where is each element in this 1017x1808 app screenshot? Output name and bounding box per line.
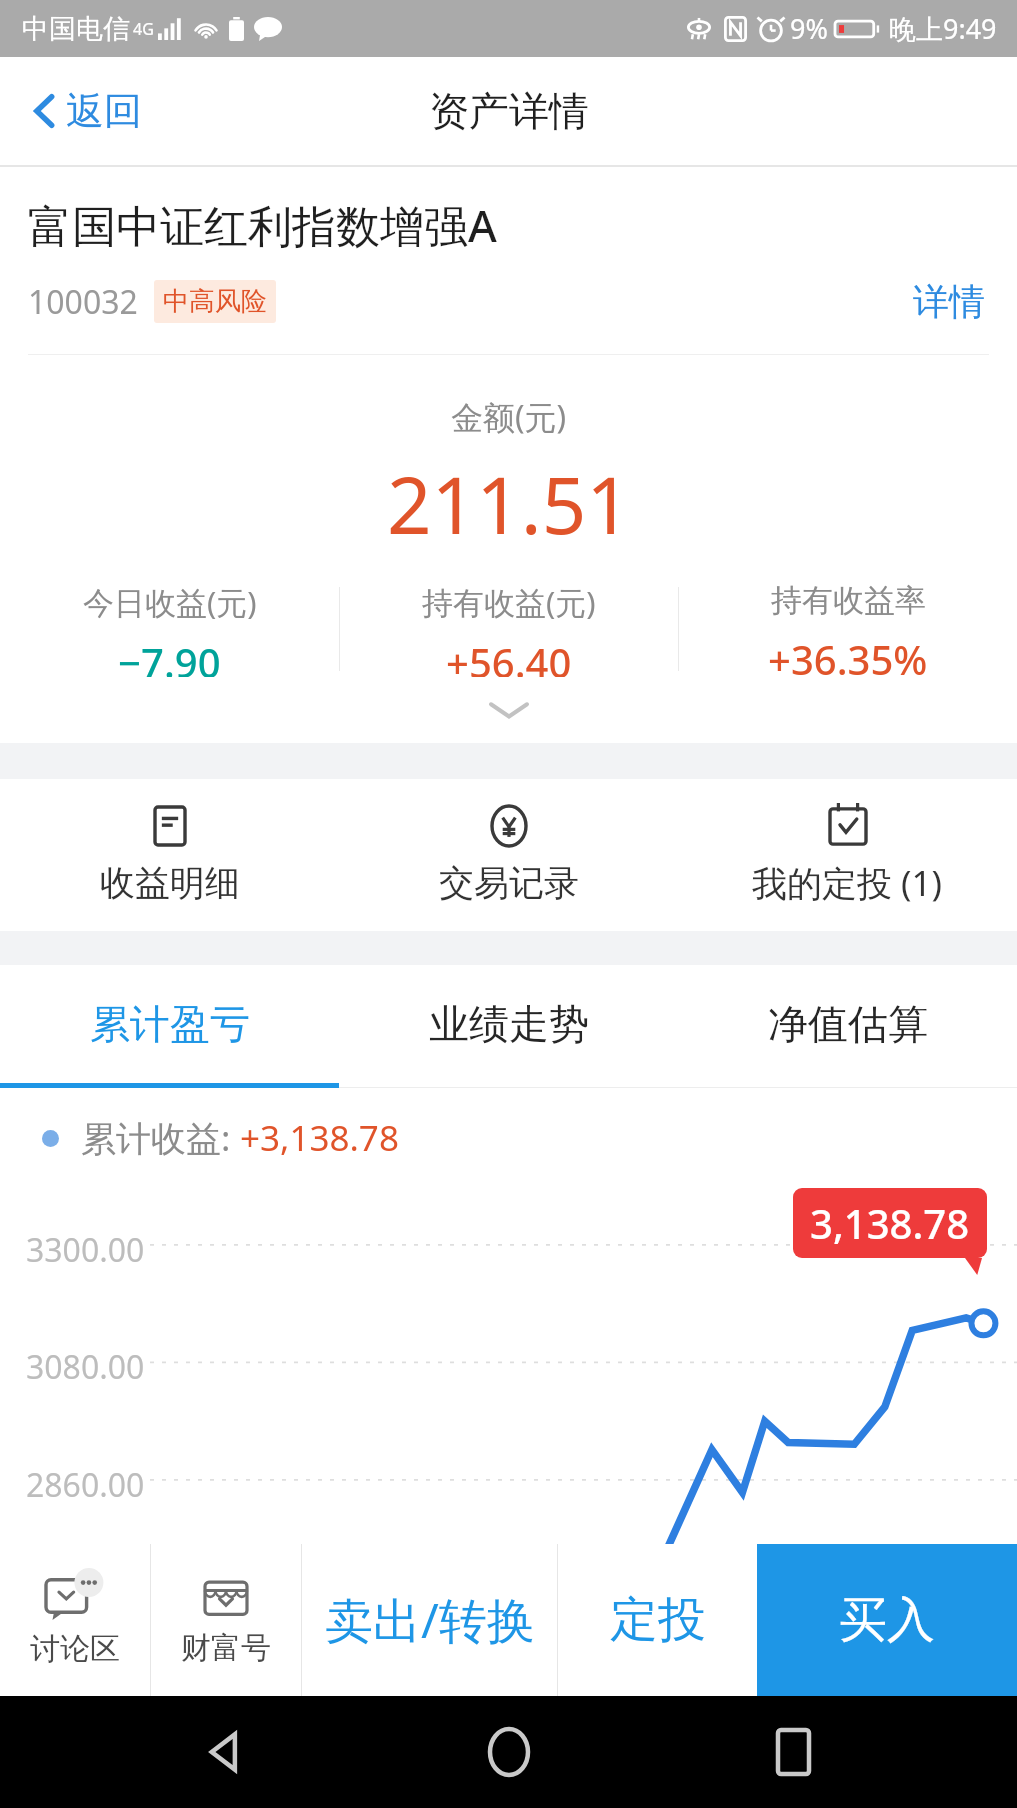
staticText: 累计盈亏 (90, 999, 250, 1049)
button[interactable]: 买入 (757, 1544, 1017, 1696)
button[interactable]: 财富号 (151, 1544, 301, 1696)
staticText: 我的定投 (1) (752, 859, 943, 907)
staticText: +3,138.78 (240, 1114, 399, 1162)
staticText: 收益明细 (100, 861, 240, 905)
button[interactable]: Recents (733, 1696, 853, 1808)
staticText: 持有收益率 (771, 581, 926, 620)
staticText: −7.90 (118, 635, 221, 677)
button[interactable]: 定投 (558, 1544, 757, 1696)
button[interactable]: 展开更多 (0, 677, 1017, 743)
staticText: 4G (133, 18, 154, 40)
staticText: 交易记录 (439, 861, 579, 905)
staticText: 返回 (66, 87, 142, 135)
staticText: +56.40 (446, 635, 572, 677)
button[interactable]: 详情 (907, 275, 991, 328)
staticText: 晚上9:49 (889, 10, 997, 47)
staticText: 中国电信 (22, 12, 130, 46)
button[interactable]: 业绩走势 (339, 965, 678, 1083)
staticText: +36.35% (768, 632, 928, 677)
button[interactable]: 收益明细 (0, 779, 339, 931)
staticText: 详情 (913, 279, 985, 324)
button[interactable]: 讨论区 (0, 1544, 150, 1696)
staticText: 100032 (28, 280, 138, 324)
staticText: 富国中证红利指数增强A (28, 195, 497, 255)
staticText: 今日收益(元) (83, 581, 257, 623)
button[interactable]: Back (164, 1696, 284, 1808)
staticText: 3300.00 (26, 1228, 145, 1272)
staticText: 持有收益(元) (422, 581, 596, 623)
button[interactable]: Home (449, 1696, 569, 1808)
staticText: 资产详情 (429, 86, 589, 136)
staticText: 累计收益: (81, 1114, 240, 1162)
staticText: 中高风险 (163, 285, 267, 318)
staticText: 讨论区 (30, 1630, 120, 1668)
button[interactable]: 累计盈亏 (0, 965, 339, 1083)
staticText: 财富号 (181, 1629, 271, 1667)
button[interactable]: 净值估算 (678, 965, 1017, 1083)
staticText: 3,138.78 (810, 1196, 970, 1250)
button[interactable]: 卖出/转换 (302, 1544, 557, 1696)
button[interactable]: 我的定投 (1) (678, 779, 1017, 931)
button[interactable]: 返回 (22, 79, 152, 143)
staticText: 9% (790, 10, 828, 47)
staticText: 业绩走势 (429, 999, 589, 1049)
staticText: 2860.00 (26, 1463, 145, 1507)
staticText: 净值估算 (768, 999, 928, 1049)
staticText: 卖出/转换 (325, 1587, 535, 1653)
staticText: 买入 (839, 1590, 935, 1650)
staticText: 定投 (610, 1590, 706, 1650)
button[interactable]: 交易记录 (339, 779, 678, 931)
staticText: 211.51 (387, 451, 631, 557)
staticText: 金额(元) (451, 395, 567, 439)
staticText: 3080.00 (26, 1345, 145, 1389)
